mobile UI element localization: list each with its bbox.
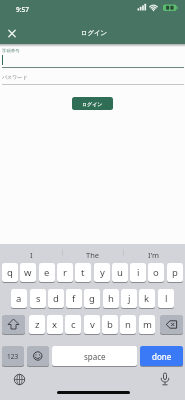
button[interactable]: r <box>57 263 73 282</box>
button[interactable]: s <box>30 289 46 308</box>
staticText: a <box>16 292 22 305</box>
staticText: ログイン <box>82 101 103 107</box>
button[interactable]: w <box>20 263 36 282</box>
staticText: u <box>117 266 123 279</box>
staticText: r <box>63 266 67 279</box>
staticText: e <box>44 266 50 279</box>
button[interactable]: u <box>112 263 128 282</box>
staticText: y <box>100 266 105 279</box>
button[interactable]: c <box>65 315 81 334</box>
staticText: g <box>89 292 95 305</box>
staticText: k <box>144 292 150 305</box>
staticText: s <box>36 292 41 305</box>
staticText: 123 <box>7 352 19 361</box>
button[interactable]: x <box>47 315 63 334</box>
staticText: c <box>71 318 76 331</box>
button[interactable]: y <box>94 263 110 282</box>
button[interactable] <box>0 46 185 68</box>
staticText: n <box>125 318 131 331</box>
button[interactable] <box>13 373 26 386</box>
staticText: b <box>107 318 113 331</box>
staticText: done <box>152 351 172 362</box>
staticText: o <box>153 266 159 279</box>
button[interactable]: q <box>2 263 18 282</box>
button[interactable]: v <box>84 315 100 334</box>
staticText: v <box>90 318 95 331</box>
button[interactable]: i <box>130 263 146 282</box>
button[interactable]: f <box>66 289 82 308</box>
button[interactable]: t <box>75 263 91 282</box>
button[interactable]: l <box>158 289 174 308</box>
button[interactable] <box>4 25 20 41</box>
staticText: パスワード <box>2 74 28 80</box>
button[interactable]: The <box>62 248 124 261</box>
button[interactable]: m <box>139 315 155 334</box>
button[interactable]: a <box>11 289 27 308</box>
staticText: d <box>53 292 59 305</box>
staticText: f <box>72 292 76 305</box>
button[interactable]: e <box>39 263 55 282</box>
button[interactable] <box>27 346 49 366</box>
button[interactable]: j <box>121 289 137 308</box>
staticText: p <box>172 266 178 279</box>
button[interactable]: ログイン <box>72 97 113 110</box>
button[interactable]: g <box>84 289 100 308</box>
button[interactable]: o <box>148 263 164 282</box>
button[interactable]: k <box>139 289 155 308</box>
button[interactable]: space <box>52 346 137 366</box>
button[interactable]: p <box>167 263 183 282</box>
button[interactable] <box>160 315 183 334</box>
staticText: I'm <box>148 250 160 260</box>
staticText: m <box>143 318 152 331</box>
button[interactable] <box>159 372 171 388</box>
button[interactable]: d <box>48 289 64 308</box>
staticText: t <box>81 266 85 279</box>
staticText: j <box>128 292 131 305</box>
button[interactable]: h <box>103 289 119 308</box>
button[interactable] <box>2 315 25 334</box>
button[interactable] <box>0 72 185 86</box>
button[interactable]: b <box>102 315 118 334</box>
staticText: x <box>52 318 58 331</box>
button[interactable]: done <box>140 346 183 366</box>
button[interactable]: I <box>0 248 62 261</box>
staticText: I <box>30 250 33 260</box>
staticText: space <box>84 351 106 362</box>
staticText: w <box>24 266 32 279</box>
staticText: h <box>108 292 114 305</box>
button[interactable]: I'm <box>123 248 185 261</box>
button[interactable]: n <box>120 315 136 334</box>
staticText: 学籍番号 <box>2 48 20 54</box>
staticText: q <box>7 266 13 279</box>
button[interactable]: 123 <box>2 346 24 366</box>
staticText: ログイン <box>81 29 108 37</box>
button[interactable]: z <box>29 315 45 334</box>
staticText: The <box>86 250 100 260</box>
staticText: i <box>137 266 140 279</box>
staticText: 9:57 <box>16 5 29 14</box>
staticText: l <box>165 292 168 305</box>
staticText: z <box>35 318 40 331</box>
